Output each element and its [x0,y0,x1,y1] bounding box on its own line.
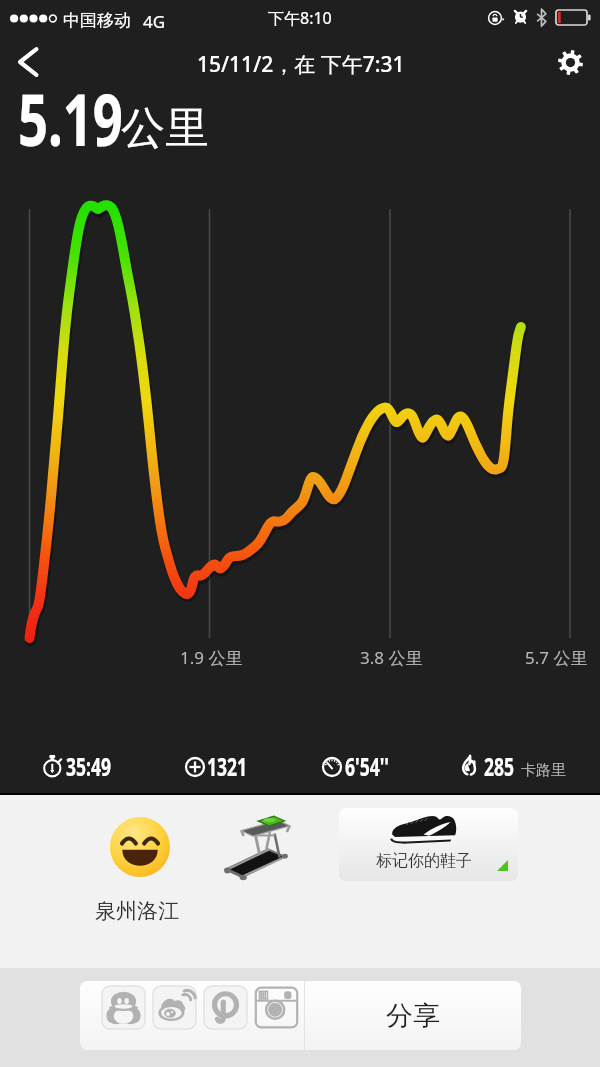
staticText: 泉州洛江 [95,898,179,924]
staticText: 下午8:10 [268,7,332,29]
staticText: 1.9 公里 [180,646,243,669]
button[interactable]: Settings [540,36,600,88]
staticText: 285 [484,749,514,783]
staticText: 中国移动 [63,10,131,31]
staticText: 15/11/2，在 下午7:31 [197,50,405,79]
staticText: 公里 [121,101,209,156]
button[interactable]: Instagram [254,985,299,1030]
staticText: 标记你的鞋子 [376,851,472,871]
button[interactable]: QQ [101,985,146,1030]
button[interactable]: 分享 [305,981,521,1050]
staticText: 5.7 公里 [525,646,588,669]
staticText: 6'54'' [345,749,389,783]
button[interactable]: Weibo [152,985,197,1030]
staticText: 1321 [207,749,248,783]
staticText: 3.8 公里 [360,646,423,669]
button[interactable]: 标记你的鞋子 [339,808,518,881]
button[interactable]: Back [0,36,56,88]
staticText: 5.19 [18,70,123,167]
staticText: 35:49 [66,749,111,783]
staticText: 4G [143,10,166,33]
button[interactable]: Path [203,985,248,1030]
staticText: 卡路里 [521,761,566,780]
staticText: 分享 [386,999,440,1033]
